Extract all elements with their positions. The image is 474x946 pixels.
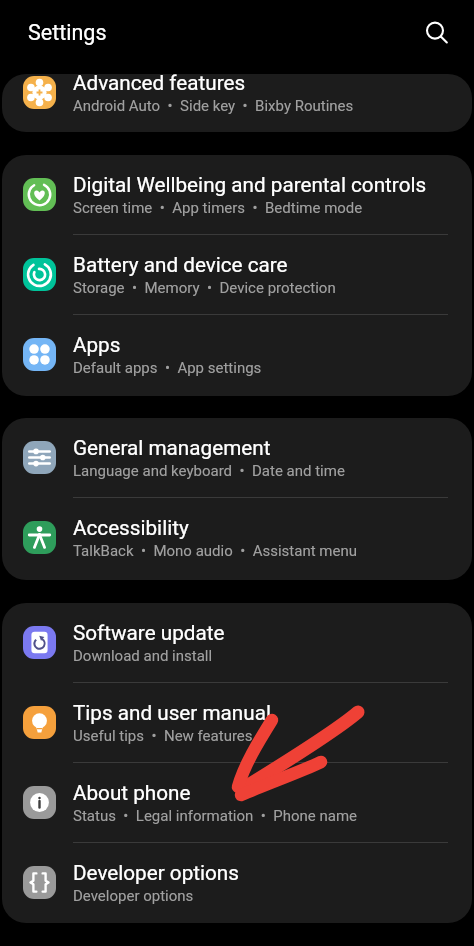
staticText: Apps xyxy=(73,333,121,357)
staticText: TalkBack • Mono audio • Assistant menu xyxy=(73,542,357,560)
button[interactable]: Tips and user manual xyxy=(2,683,472,762)
staticText: About phone xyxy=(73,781,191,805)
staticText: Storage • Memory • Device protection xyxy=(73,279,336,297)
staticText: Status • Legal information • Phone name xyxy=(73,807,358,825)
button[interactable]: Digital Wellbeing and parental controls xyxy=(2,155,472,234)
staticText: Android Auto • Side key • Bixby Routines xyxy=(73,97,354,115)
button[interactable]: General management xyxy=(2,418,472,497)
staticText: Battery and device care xyxy=(73,253,288,277)
staticText: Settings xyxy=(28,20,107,45)
staticText: Language and keyboard • Date and time xyxy=(73,462,345,480)
button[interactable]: Developer options xyxy=(2,843,472,922)
staticText: Advanced features xyxy=(73,74,246,95)
staticText: Download and install xyxy=(73,647,213,665)
staticText: Software update xyxy=(73,621,225,645)
staticText: Accessibility xyxy=(73,516,189,540)
staticText: Developer options xyxy=(73,861,239,885)
button[interactable]: Apps xyxy=(2,315,472,394)
staticText: Tips and user manual xyxy=(73,701,271,725)
staticText: Useful tips • New features xyxy=(73,727,253,745)
staticText: General management xyxy=(73,436,271,460)
button[interactable]: Advanced features xyxy=(2,74,472,132)
button[interactable]: Battery and device care xyxy=(2,235,472,314)
button[interactable]: Search xyxy=(415,11,457,53)
staticText: Screen time • App timers • Bedtime mode xyxy=(73,199,363,217)
button[interactable]: Accessibility xyxy=(2,498,472,577)
staticText: Digital Wellbeing and parental controls xyxy=(73,173,427,197)
staticText: Default apps • App settings xyxy=(73,359,262,377)
button[interactable]: About phone xyxy=(2,763,472,842)
button[interactable]: Software update xyxy=(2,603,472,682)
staticText: Developer options xyxy=(73,887,194,905)
